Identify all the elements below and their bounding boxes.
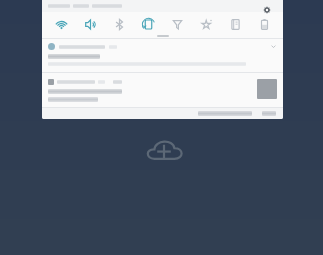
button[interactable]: Battery saver xyxy=(251,12,277,36)
button[interactable] xyxy=(197,110,253,117)
button[interactable]: Bluetooth xyxy=(106,12,132,36)
button[interactable]: Auto rotate xyxy=(135,12,161,36)
button[interactable] xyxy=(42,75,283,106)
button[interactable]: Wi-Fi xyxy=(48,12,74,36)
button[interactable]: Settings xyxy=(259,2,275,18)
button[interactable]: Do not disturb xyxy=(164,12,190,36)
button[interactable]: Reading mode xyxy=(222,12,248,36)
button[interactable]: Sound xyxy=(77,12,103,36)
button[interactable]: Night light xyxy=(193,12,219,36)
button[interactable] xyxy=(261,110,277,117)
button[interactable] xyxy=(42,39,283,72)
button[interactable]: Add cloud account xyxy=(142,134,186,168)
